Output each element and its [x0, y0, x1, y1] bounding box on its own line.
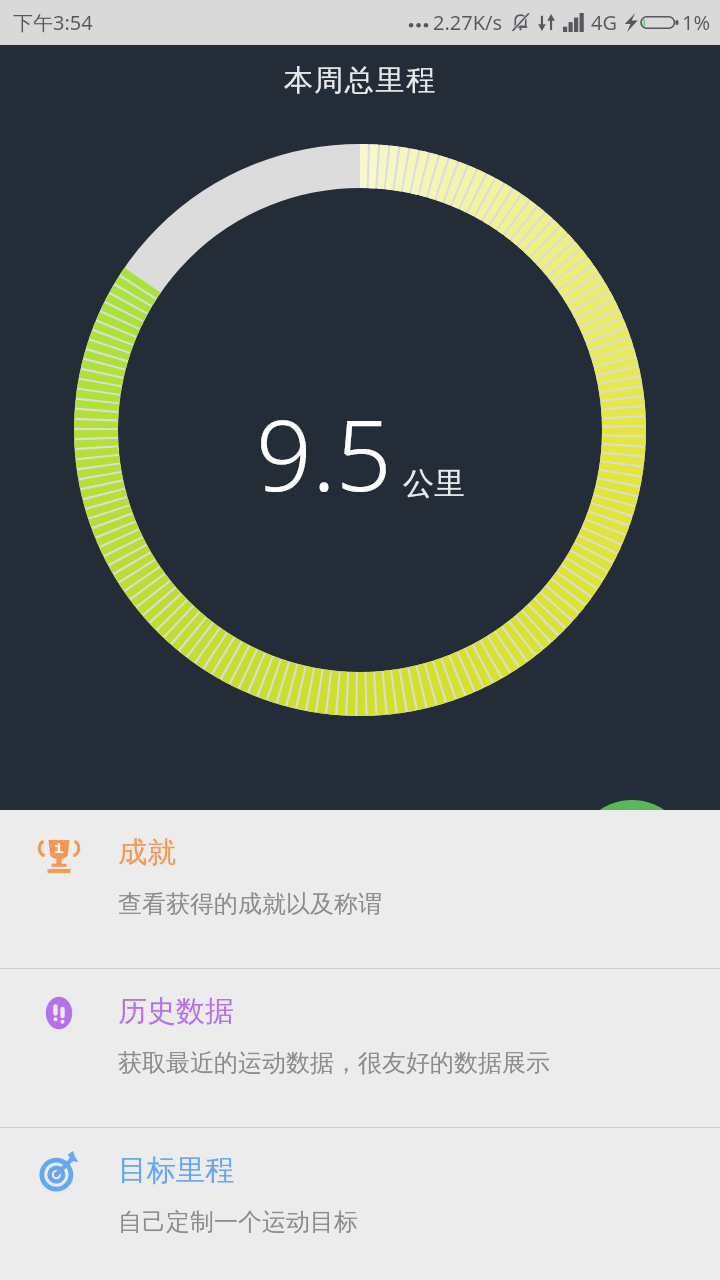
staticText: 目标里程 — [118, 1152, 234, 1189]
staticText: 1% — [682, 9, 711, 36]
staticText: 本周总里程 — [284, 62, 437, 99]
button[interactable]: 目标里程 — [0, 1128, 720, 1280]
staticText: 2.27K/s — [433, 9, 503, 36]
staticText: 4G — [591, 9, 617, 36]
button[interactable]: 开始跑步 — [575, 800, 689, 914]
staticText: 查看获得的成就以及称谓 — [118, 889, 382, 919]
staticText: 自己定制一个运动目标 — [118, 1207, 358, 1237]
staticText: 公里 — [403, 464, 465, 503]
staticText: 下午3:54 — [13, 9, 93, 36]
staticText: 成就 — [118, 834, 176, 871]
staticText: 获取最近的运动数据，很友好的数据展示 — [118, 1048, 550, 1078]
button[interactable]: 成就 — [0, 810, 720, 968]
staticText: 9.5 — [256, 386, 392, 519]
button[interactable]: 历史数据 — [0, 969, 720, 1127]
staticText: 历史数据 — [118, 993, 234, 1030]
